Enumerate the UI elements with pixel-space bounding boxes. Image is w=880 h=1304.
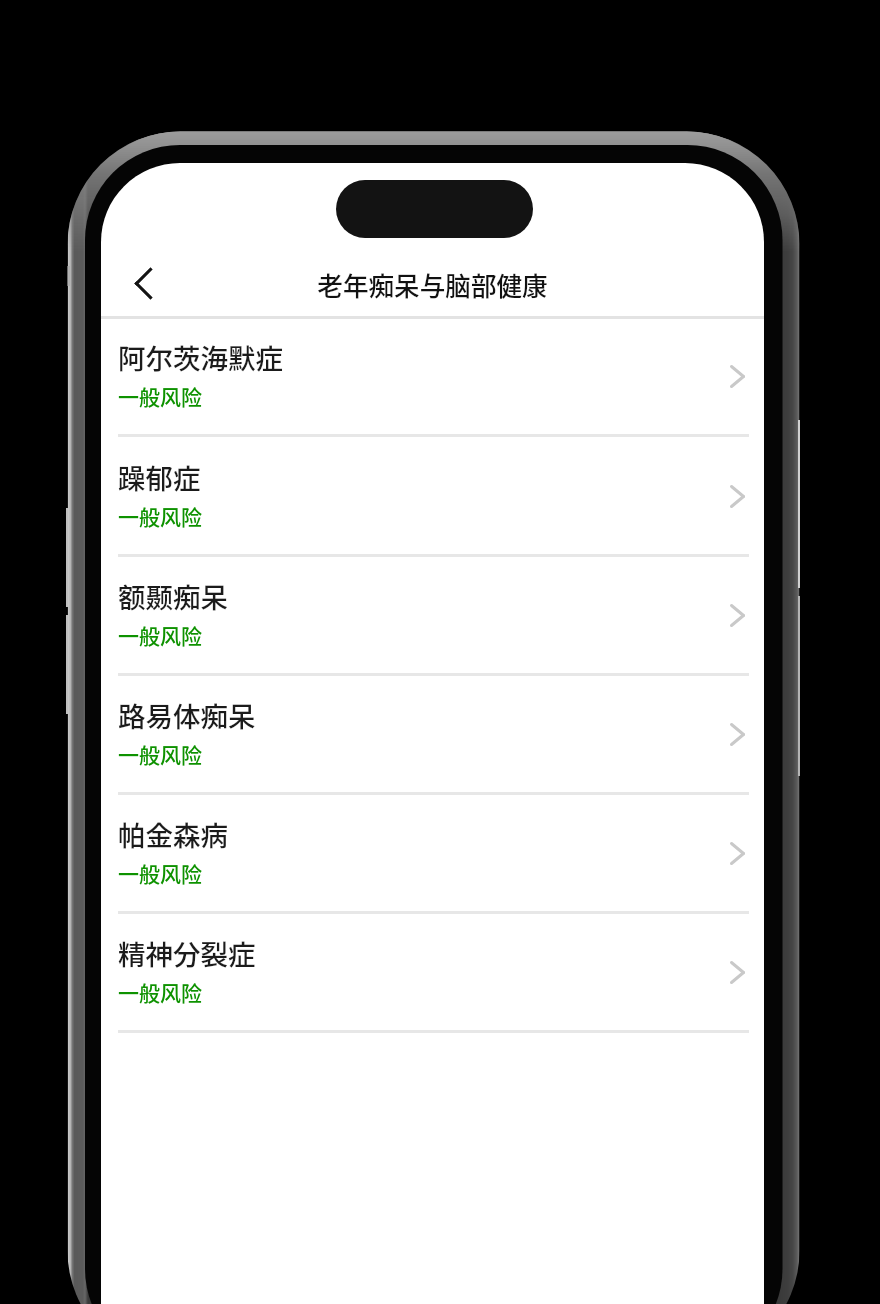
staticText: 额颞痴呆 [118, 576, 228, 616]
button[interactable]: 阿尔茨海默症 [101, 319, 764, 438]
staticText: 老年痴呆与脑部健康 [317, 266, 548, 303]
button[interactable]: 精神分裂症 [101, 915, 764, 1034]
button[interactable]: 帕金森病 [101, 796, 764, 915]
staticText: 阿尔茨海默症 [118, 337, 283, 377]
staticText: 一般风险 [118, 858, 202, 888]
staticText: 一般风险 [118, 977, 202, 1007]
staticText: 精神分裂症 [118, 933, 256, 973]
button[interactable]: 躁郁症 [101, 439, 764, 558]
staticText: 帕金森病 [118, 814, 228, 854]
staticText: 一般风险 [118, 739, 202, 769]
staticText: 路易体痴呆 [118, 695, 256, 735]
staticText: 躁郁症 [118, 457, 201, 497]
staticText: 一般风险 [118, 620, 202, 650]
button[interactable]: 额颞痴呆 [101, 558, 764, 677]
staticText: 一般风险 [118, 501, 202, 531]
button[interactable]: 返回 [114, 253, 172, 313]
button[interactable]: 路易体痴呆 [101, 677, 764, 796]
staticText: 一般风险 [118, 381, 202, 411]
